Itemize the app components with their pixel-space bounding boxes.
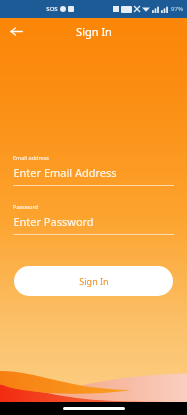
staticText: Password [13, 203, 38, 210]
staticText: Enter Password [13, 214, 94, 229]
button[interactable]: Back [4, 19, 28, 43]
staticText: Sign In [76, 24, 112, 39]
staticText: SOS [46, 5, 58, 13]
button[interactable]: Email address [13, 154, 174, 186]
staticText: 97% [171, 5, 183, 13]
staticText: Enter Email Address [13, 165, 117, 180]
button[interactable]: Sign In [14, 266, 173, 296]
staticText: Sign In [79, 275, 109, 287]
staticText: Email address [13, 154, 49, 161]
button[interactable]: Password [13, 203, 174, 235]
